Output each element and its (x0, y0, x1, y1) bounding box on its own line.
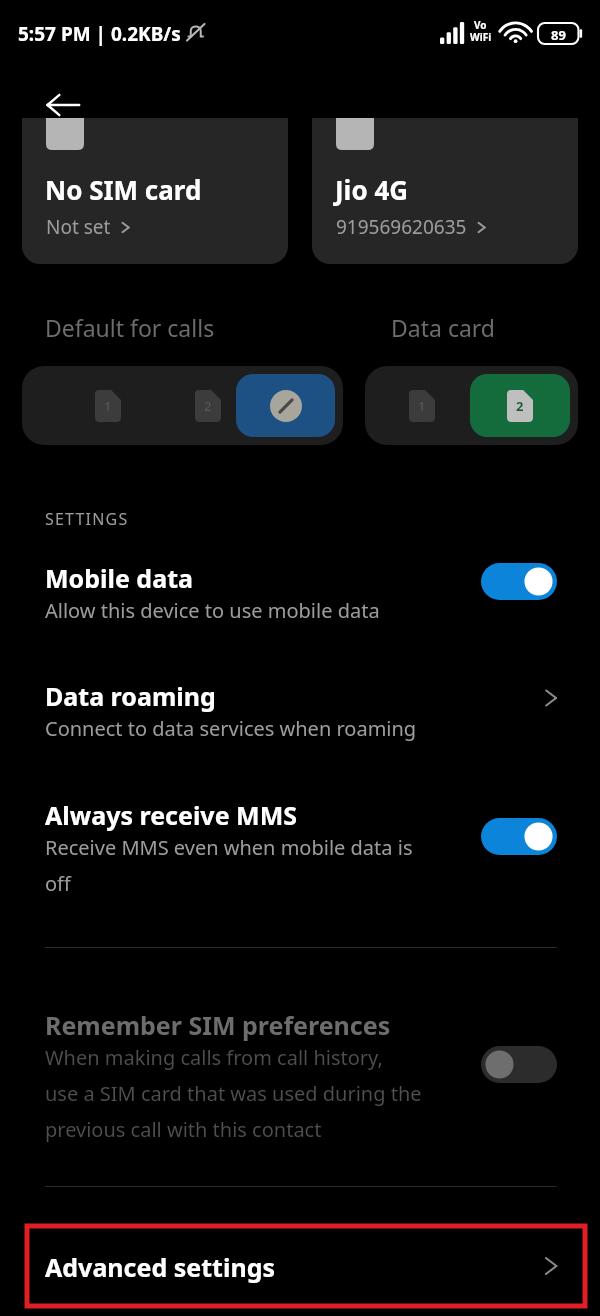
button[interactable]: Mobile data (0, 547, 600, 633)
button[interactable]: Remember SIM preferences (481, 1046, 557, 1083)
staticText: 1 (104, 397, 112, 415)
staticText: Default for calls (45, 312, 215, 343)
button[interactable]: Advanced settings (27, 1226, 585, 1306)
staticText: Connect to data services when roaming (45, 715, 417, 742)
button[interactable]: No SIM card (22, 118, 288, 264)
staticText: 919569620635 (336, 214, 467, 240)
staticText: No SIM card (45, 172, 202, 207)
button[interactable]: Remember SIM preferences (0, 994, 600, 1152)
staticText: 89 (551, 26, 566, 44)
staticText: Data card (391, 312, 496, 343)
button[interactable]: Mobile data (481, 563, 557, 600)
button[interactable]: SIM 2 (158, 366, 258, 445)
staticText: SETTINGS (45, 508, 129, 530)
staticText: use a SIM card that was used during the (45, 1080, 422, 1107)
staticText: Always receive MMS (45, 798, 297, 832)
staticText: Mobile data (45, 561, 193, 595)
staticText: Data roaming (45, 679, 216, 713)
staticText: 2 (516, 397, 524, 415)
staticText: Allow this device to use mobile data (45, 597, 380, 624)
staticText: Vo (474, 18, 487, 32)
staticText: 1 (418, 397, 426, 415)
staticText: Receive MMS even when mobile data is (45, 834, 413, 861)
button[interactable]: Jio 4G (312, 118, 578, 264)
button[interactable]: Always receive MMS (481, 818, 557, 855)
staticText: Not set (46, 214, 111, 240)
button[interactable]: Data SIM 2 selected (470, 374, 570, 437)
staticText: 5:57 PM | 0.2KB/s (18, 21, 181, 47)
button[interactable]: SIM 1 (58, 366, 158, 445)
staticText: 2 (204, 397, 212, 415)
button[interactable]: Back (28, 70, 98, 140)
staticText: Remember SIM preferences (45, 1008, 391, 1042)
staticText: Jio 4G (335, 172, 409, 207)
staticText: previous call with this contact (45, 1116, 322, 1143)
staticText: Advanced settings (45, 1250, 275, 1284)
button[interactable]: Data SIM 1 (373, 366, 470, 445)
staticText: WiFi (470, 30, 492, 44)
button[interactable]: Data roaming (0, 665, 600, 751)
button[interactable]: Always receive MMS (0, 784, 600, 906)
button[interactable]: Ask every time (236, 374, 335, 437)
staticText: off (45, 870, 71, 897)
staticText: When making calls from call history, (45, 1044, 383, 1071)
